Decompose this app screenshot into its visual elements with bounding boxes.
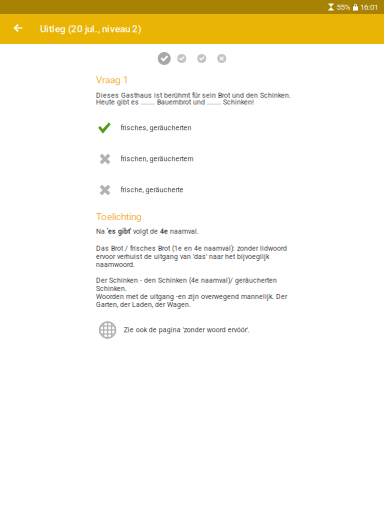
- staticText: Vraag 1: [96, 74, 129, 86]
- staticText: frische, geräucherte: [120, 186, 183, 194]
- button[interactable]: frische, geräucherte: [0, 180, 384, 200]
- staticText: frischen, geräuchertem: [120, 155, 193, 163]
- button[interactable]: Stap 3: [197, 54, 206, 63]
- staticText: Dieses Gasthaus ist berühmt für sein Bro…: [96, 91, 291, 106]
- button[interactable]: Zie ook de pagina 'zonder woord ervóór'.: [0, 321, 384, 339]
- staticText: frisches, geräucherten: [120, 124, 191, 132]
- button[interactable]: Stap 2: [177, 54, 186, 63]
- button[interactable]: frisches, geräucherten: [0, 118, 384, 138]
- staticText: 16:01: [360, 2, 378, 12]
- staticText: Toelichting: [96, 211, 142, 222]
- staticText: Zie ook de pagina 'zonder woord ervóór'.: [124, 326, 250, 334]
- button[interactable]: Stap 1 voltooid: [158, 52, 171, 65]
- button[interactable]: frischen, geräuchertem: [0, 149, 384, 169]
- staticText: Uitleg (20 jul., niveau 2): [40, 23, 141, 35]
- staticText: Der Schinken - den Schinken (4e naamval)…: [96, 276, 287, 309]
- button[interactable]: Stap 4: [217, 54, 226, 63]
- button[interactable]: Terug: [0, 14, 30, 44]
- staticText: Na 'es gibt' volgt de 4e naamval.: [96, 227, 199, 235]
- staticText: 55%: [336, 2, 350, 12]
- staticText: Das Brot / frisches Brot (1e en 4e naamv…: [96, 244, 287, 269]
